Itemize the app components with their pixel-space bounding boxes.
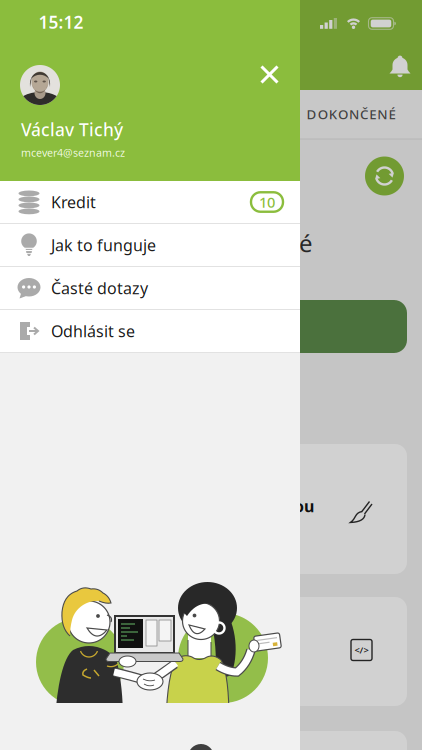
button[interactable]: Kredit (0, 181, 300, 223)
button[interactable]: Další hra (15, 731, 407, 750)
button[interactable]: Notifications (389, 55, 411, 79)
staticText: Vytvořte hru s kamarádkou (95, 495, 314, 517)
button[interactable]: Refresh (365, 156, 404, 195)
button[interactable]: Odhlásit se (0, 310, 300, 352)
button[interactable]: Vytvořte hru s kamarádkou (15, 444, 407, 574)
staticText: Dokončené (182, 227, 313, 259)
staticText: </> (354, 644, 368, 656)
staticText: Václav Tichý (21, 118, 123, 141)
staticText: Časté dotazy (51, 277, 148, 299)
button[interactable]: Nová hra (15, 300, 407, 353)
staticText: DOKONČENÉ (307, 105, 395, 123)
staticText: Kredit (51, 191, 96, 213)
button[interactable]: Jak to funguje (0, 224, 300, 266)
staticText: mcever4@seznam.cz (21, 145, 125, 160)
button[interactable]: Časté dotazy (0, 267, 300, 309)
button[interactable]: Close (260, 65, 279, 84)
button[interactable]: Hra s kódem (15, 597, 407, 706)
staticText: Jak to funguje (51, 234, 156, 256)
staticText: 10 (259, 192, 275, 212)
staticText: 15:12 (38, 10, 83, 33)
button[interactable]: DOKONČENÉ (307, 105, 395, 123)
staticText: Odhlásit se (51, 320, 135, 342)
